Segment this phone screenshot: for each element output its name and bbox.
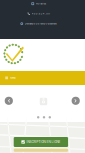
staticText: 450.624.7777 [32,12,50,15]
staticText: Menu [10,76,15,79]
button[interactable]: Image précédente [4,96,13,105]
button[interactable]: Accueil [2,44,26,64]
button[interactable]: INSCRIPTION EN LIGNE [14,137,68,147]
button[interactable]: Image suivante [71,96,80,105]
button[interactable]: Horaires [0,0,77,7]
button[interactable]: 450.624.7777 [0,10,77,17]
button[interactable]: Prendre rendez-vous [14,149,68,152]
staticText: Demande de remboursement [25,22,57,25]
staticText: Horaires [36,2,46,5]
button[interactable]: Demande de remboursement [0,20,77,27]
button[interactable]: Menu [0,71,85,85]
staticText: INSCRIPTION EN LIGNE [26,140,60,144]
